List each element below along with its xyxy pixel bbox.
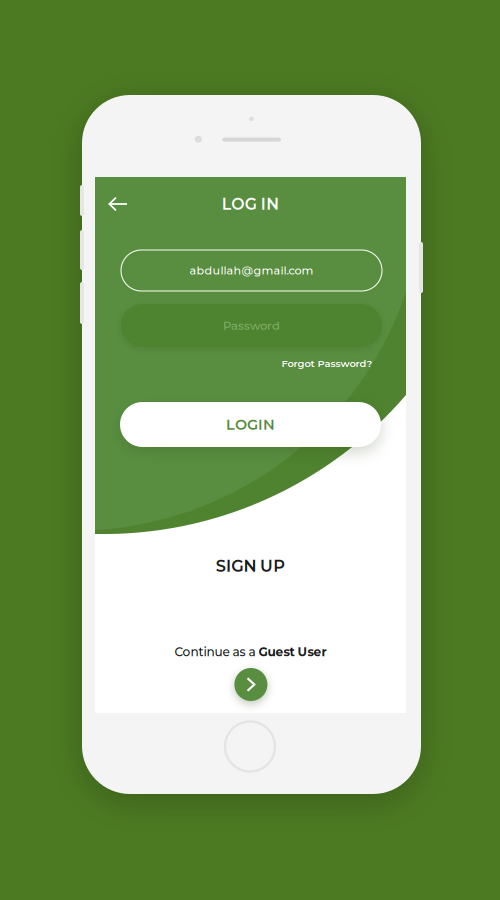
button[interactable]: Forgot Password? xyxy=(222,355,372,371)
button[interactable]: S xyxy=(95,554,406,578)
staticText: abdullah@gmail.com xyxy=(189,264,313,277)
staticText: O xyxy=(231,194,244,214)
button[interactable]: Password xyxy=(121,304,382,347)
staticText: S xyxy=(216,556,226,576)
button[interactable]: L xyxy=(120,402,381,447)
button[interactable]: Continue as guest xyxy=(234,668,267,701)
staticText: N xyxy=(243,556,256,576)
staticText: I xyxy=(261,194,266,214)
button[interactable]: Back xyxy=(96,182,140,226)
staticText: N xyxy=(263,416,275,433)
staticText: Guest User xyxy=(258,645,326,659)
staticText: G xyxy=(245,194,257,214)
staticText: I xyxy=(258,416,263,433)
staticText: N xyxy=(266,194,279,214)
staticText: P xyxy=(273,556,285,576)
staticText: Forgot Password? xyxy=(281,357,372,369)
staticText: Password xyxy=(223,318,280,332)
staticText: U xyxy=(260,556,273,576)
button[interactable]: abdullah@gmail.com xyxy=(121,250,382,291)
staticText: G xyxy=(231,556,243,576)
staticText: L xyxy=(222,194,231,214)
staticText: I xyxy=(226,556,231,576)
staticText: O xyxy=(235,416,247,433)
staticText: L xyxy=(226,416,235,433)
button[interactable]: Continue as a xyxy=(95,643,406,661)
staticText: Continue as a xyxy=(174,645,258,659)
staticText: G xyxy=(247,416,258,433)
